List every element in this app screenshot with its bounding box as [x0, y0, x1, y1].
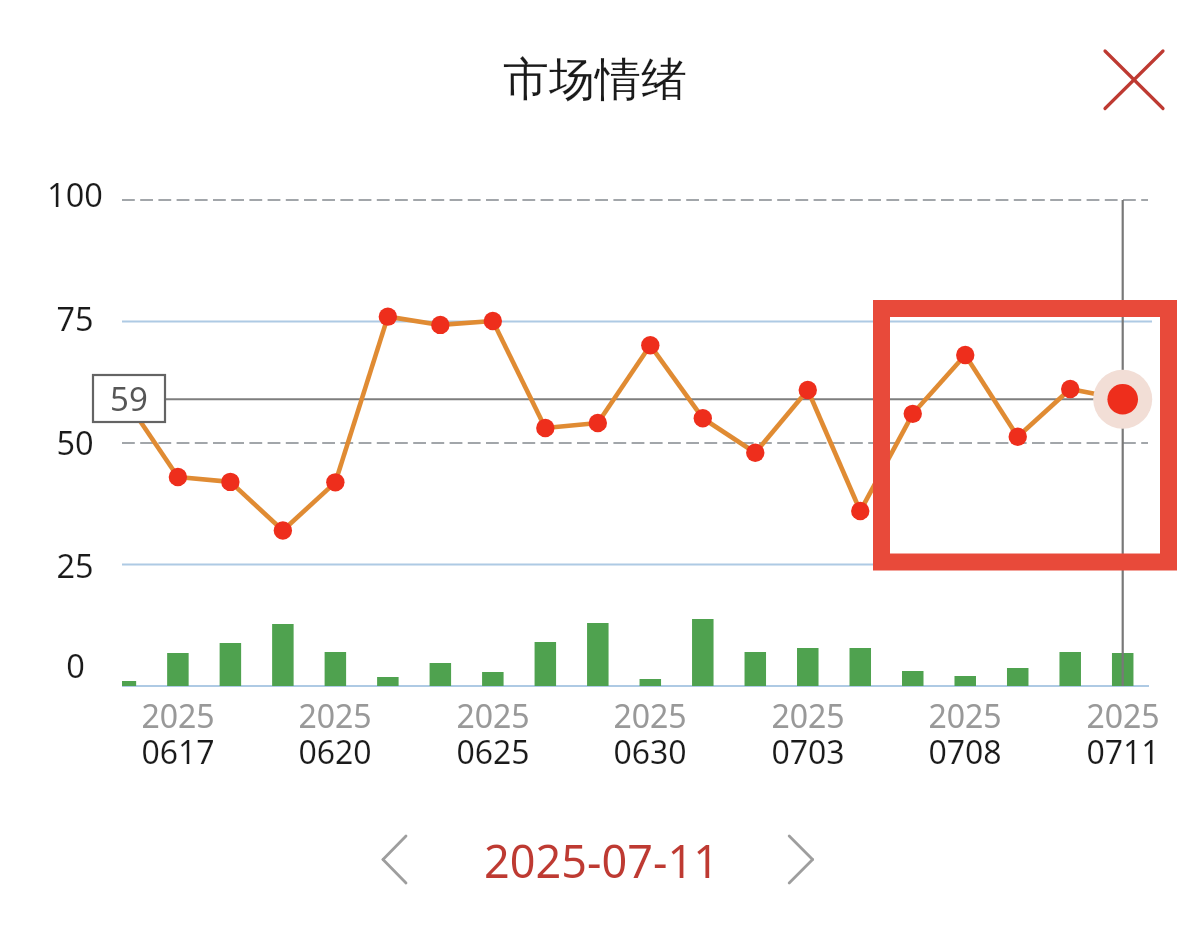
- staticText: 0711: [1086, 730, 1160, 774]
- staticText: 0: [66, 643, 85, 687]
- staticText: 2025: [141, 694, 215, 738]
- button[interactable]: Close: [1090, 36, 1178, 124]
- staticText: 2025: [771, 694, 845, 738]
- staticText: 2025: [928, 694, 1002, 738]
- staticText: 2025: [456, 694, 530, 738]
- staticText: 25: [56, 543, 94, 587]
- button[interactable]: Next day: [770, 820, 840, 900]
- staticText: 0630: [613, 730, 687, 774]
- staticText: 75: [56, 296, 94, 340]
- staticText: 0625: [456, 730, 530, 774]
- staticText: 0708: [928, 730, 1002, 774]
- button[interactable]: 2025-07-11: [444, 828, 758, 892]
- staticText: 0617: [141, 730, 215, 774]
- staticText: 0620: [298, 730, 372, 774]
- button[interactable]: Previous day: [360, 820, 430, 900]
- staticText: 59: [110, 376, 148, 421]
- staticText: 市场情绪: [503, 51, 687, 109]
- staticText: 2025: [298, 694, 372, 738]
- staticText: 2025: [613, 694, 687, 738]
- staticText: 2025-07-11: [484, 830, 719, 891]
- staticText: 100: [47, 172, 103, 216]
- staticText: 50: [56, 420, 94, 464]
- staticText: 2025: [1086, 694, 1160, 738]
- staticText: 0703: [771, 730, 845, 774]
